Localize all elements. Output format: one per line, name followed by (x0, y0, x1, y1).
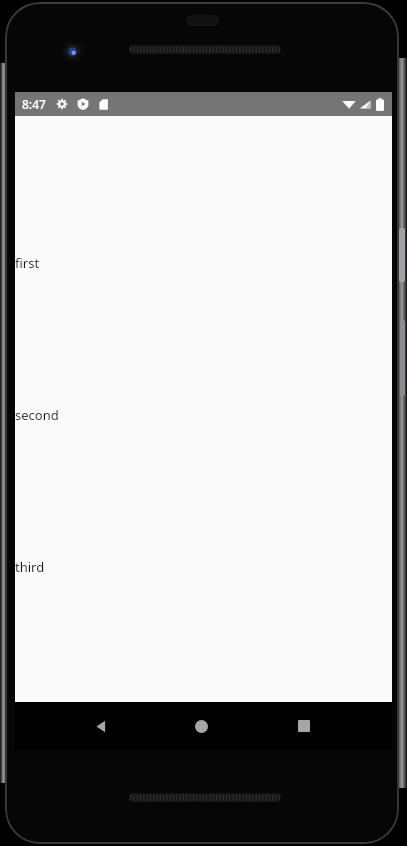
staticText: third (15, 558, 45, 576)
button[interactable]: second (15, 406, 392, 558)
button[interactable]: Home (177, 702, 225, 750)
button[interactable]: Back (77, 702, 125, 750)
button[interactable]: third (15, 558, 392, 702)
button[interactable]: Recent apps (280, 702, 328, 750)
button[interactable]: Power (399, 228, 405, 282)
staticText: second (15, 406, 59, 424)
staticText: first (15, 254, 40, 272)
button[interactable]: first (15, 254, 392, 406)
staticText: 8:47 (22, 96, 46, 112)
